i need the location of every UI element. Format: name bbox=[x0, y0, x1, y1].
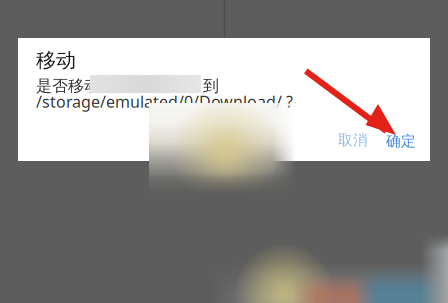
button[interactable]: 确定 bbox=[376, 124, 426, 158]
staticText: 移动 bbox=[36, 48, 76, 73]
staticText: 是否移动 bbox=[36, 76, 100, 96]
staticText: 取消 bbox=[338, 131, 368, 149]
staticText: 确定 bbox=[386, 132, 416, 150]
staticText: /storage/emulated/0/Download/ ? bbox=[36, 91, 293, 112]
staticText: 到 bbox=[203, 76, 219, 96]
button[interactable]: 取消 bbox=[328, 123, 378, 157]
